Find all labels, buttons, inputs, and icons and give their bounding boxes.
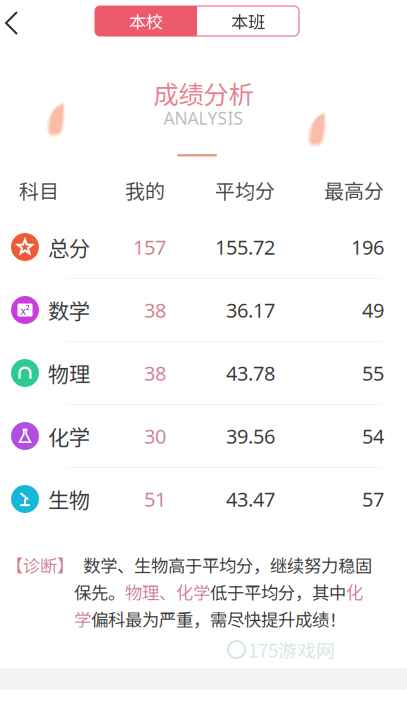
- staticText: 36.17: [226, 297, 275, 323]
- staticText: 155.72: [215, 234, 275, 260]
- staticText: 化: [346, 579, 363, 605]
- staticText: 30: [144, 423, 166, 449]
- staticText: 生物: [48, 484, 90, 514]
- button[interactable]: Back: [0, 0, 32, 47]
- staticText: 49: [362, 297, 384, 323]
- staticText: 51: [144, 486, 166, 512]
- staticText: 175游戏网: [248, 636, 335, 663]
- staticText: 39.56: [226, 423, 275, 449]
- staticText: 43.78: [226, 360, 275, 386]
- staticText: 【诊断】: [6, 552, 74, 578]
- staticText: 38: [144, 297, 166, 323]
- staticText: 本班: [231, 8, 265, 34]
- staticText: 我的: [125, 175, 165, 204]
- button[interactable]: 本校: [95, 6, 197, 36]
- staticText: 43.47: [226, 486, 275, 512]
- staticText: 54: [362, 423, 384, 449]
- staticText: ANALYSIS: [163, 106, 243, 129]
- staticText: 成绩分析: [153, 75, 253, 111]
- staticText: x²: [20, 302, 29, 318]
- staticText: 偏科最为严重，需尽快提升成绩！: [91, 606, 346, 632]
- staticText: 55: [362, 360, 384, 386]
- staticText: 数学、生物高于平均分，继续努力稳固: [83, 552, 372, 578]
- staticText: 38: [144, 360, 166, 386]
- staticText: 最高分: [324, 175, 384, 204]
- staticText: 57: [362, 486, 384, 512]
- staticText: 化学: [48, 421, 90, 451]
- staticText: 低于平均分，其中: [210, 579, 346, 605]
- button[interactable]: 本班: [197, 6, 299, 36]
- staticText: 保先。: [74, 579, 125, 605]
- staticText: 物理、化学: [125, 579, 210, 605]
- staticText: 157: [133, 234, 166, 260]
- staticText: 科目: [19, 175, 59, 204]
- staticText: 学: [74, 606, 91, 632]
- staticText: 196: [351, 234, 384, 260]
- staticText: 物理: [48, 358, 90, 388]
- staticText: 总分: [48, 232, 90, 262]
- staticText: 平均分: [215, 175, 275, 204]
- staticText: 本校: [129, 8, 163, 34]
- staticText: 数学: [48, 295, 90, 325]
